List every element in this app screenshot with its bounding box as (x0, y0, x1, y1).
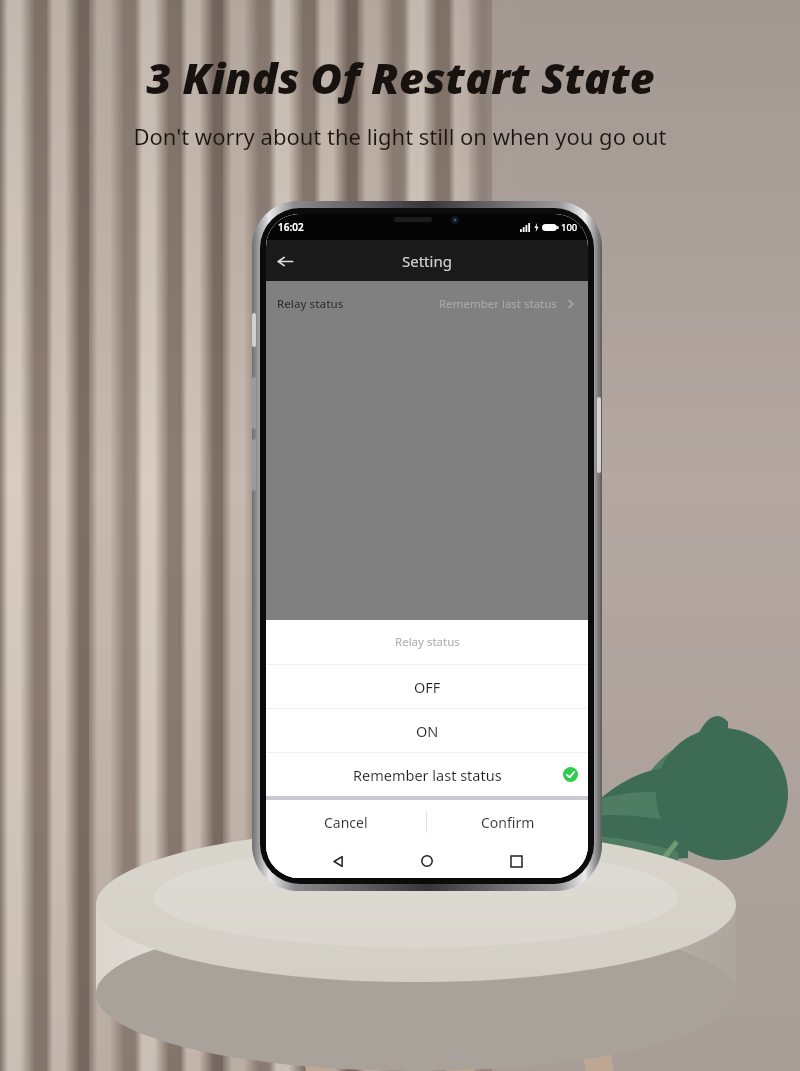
staticText: Relay status (277, 296, 344, 312)
button[interactable]: Relay status (266, 281, 588, 327)
button[interactable]: ON (266, 709, 588, 752)
staticText: Relay status (395, 634, 460, 650)
button[interactable]: OFF (266, 665, 588, 708)
staticText: Remember last status (353, 765, 502, 785)
staticText: Cancel (324, 813, 368, 832)
staticText: OFF (414, 677, 441, 697)
staticText: Remember last status (439, 296, 557, 312)
staticText: Confirm (481, 813, 535, 832)
button[interactable]: Back (266, 242, 304, 280)
button[interactable]: Cancel (266, 800, 426, 844)
staticText: 100 (561, 221, 578, 234)
staticText: Don't worry about the light still on whe… (133, 121, 667, 151)
button[interactable]: Home (410, 844, 444, 878)
staticText: ON (416, 721, 439, 741)
button[interactable]: Confirm (427, 800, 588, 844)
button[interactable]: Back (321, 844, 355, 878)
staticText: 16:02 (278, 220, 304, 234)
staticText: Setting (402, 251, 452, 271)
staticText: 3 Kinds Of Restart State (146, 48, 655, 107)
button[interactable]: Recents (499, 844, 533, 878)
button[interactable]: Remember last status (266, 753, 588, 796)
